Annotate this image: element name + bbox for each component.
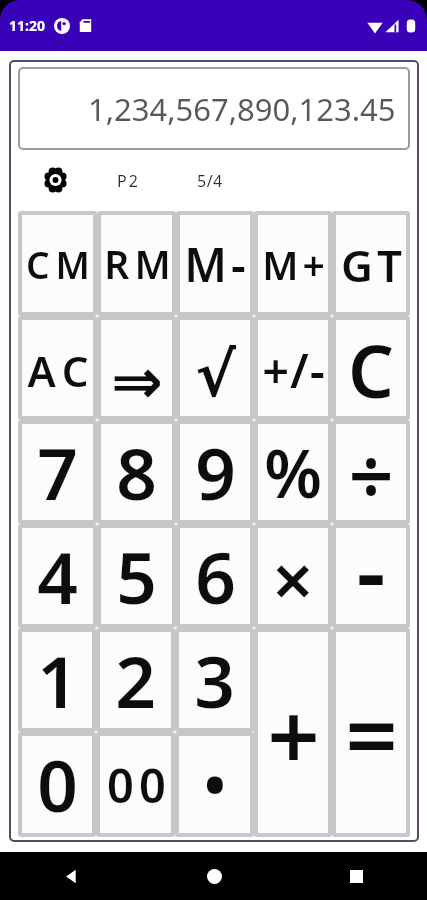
button[interactable]: M+	[254, 211, 332, 316]
staticText: √	[195, 339, 236, 410]
button[interactable]: CM	[18, 211, 97, 316]
button[interactable]: C	[332, 316, 410, 420]
staticText: 3	[194, 632, 235, 729]
button[interactable]: √	[176, 316, 254, 420]
staticText: +/-	[262, 338, 326, 402]
button[interactable]: +	[254, 628, 332, 837]
staticText: 8	[116, 424, 157, 521]
staticText: 00	[107, 753, 171, 817]
staticText: P2	[117, 170, 140, 192]
staticText: 5/4	[197, 170, 223, 192]
staticText: AC	[27, 342, 96, 399]
staticText: ÷	[348, 421, 394, 525]
button[interactable]: 00	[96, 732, 175, 837]
staticText: M-	[184, 233, 250, 296]
staticText: +	[267, 672, 320, 797]
staticText: C	[348, 321, 394, 419]
button[interactable]: •	[175, 732, 254, 837]
staticText: GT	[341, 235, 406, 295]
button[interactable]: 8	[97, 420, 176, 524]
staticText: CM	[26, 239, 96, 289]
button[interactable]: ÷	[332, 420, 410, 524]
button[interactable]: 7	[18, 420, 97, 524]
staticText: -	[356, 507, 386, 611]
staticText: ⇒	[111, 345, 163, 417]
button[interactable]: Home	[143, 852, 285, 900]
button[interactable]: Recent apps	[285, 852, 427, 900]
staticText: RM	[104, 237, 176, 290]
staticText: =	[345, 671, 398, 796]
staticText: M+	[262, 238, 329, 291]
button[interactable]: =	[332, 628, 410, 837]
button[interactable]: Settings	[46, 169, 65, 192]
button[interactable]: ⇒	[97, 316, 176, 420]
button[interactable]: AC	[18, 316, 97, 420]
button[interactable]: 2	[96, 628, 175, 732]
staticText: •	[203, 742, 227, 826]
staticText: 11:20	[9, 16, 45, 35]
button[interactable]: 4	[18, 524, 97, 628]
button[interactable]: GT	[332, 211, 410, 316]
staticText: ×	[272, 529, 314, 628]
button[interactable]: Back	[0, 852, 143, 900]
staticText: 1	[37, 632, 78, 729]
button[interactable]: -	[332, 524, 410, 628]
staticText: 1,234,567,890,123.45	[88, 88, 396, 130]
button[interactable]: 5	[97, 524, 176, 628]
staticText: 2	[115, 632, 156, 729]
button[interactable]: 6	[176, 524, 254, 628]
staticText: 6	[195, 528, 236, 625]
button[interactable]: 1	[18, 628, 96, 732]
staticText: 5	[116, 528, 157, 625]
button[interactable]: +/-	[254, 316, 332, 420]
button[interactable]: 3	[175, 628, 254, 732]
button[interactable]: 9	[176, 420, 254, 524]
staticText: 0	[37, 736, 78, 833]
button[interactable]: %	[254, 420, 332, 524]
staticText: 7	[37, 424, 78, 521]
staticText: 9	[195, 424, 236, 521]
staticText: %	[264, 427, 322, 517]
button[interactable]: 0	[18, 732, 96, 837]
button[interactable]: ×	[254, 524, 332, 628]
staticText: 4	[37, 528, 78, 625]
button[interactable]: RM	[97, 211, 176, 316]
button[interactable]: M-	[176, 211, 254, 316]
